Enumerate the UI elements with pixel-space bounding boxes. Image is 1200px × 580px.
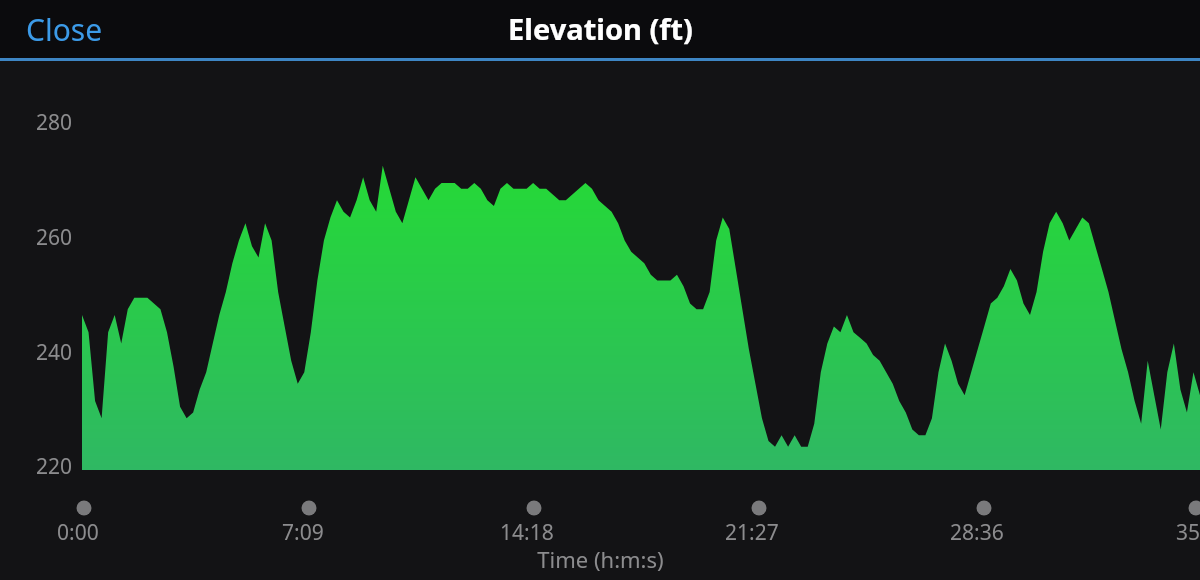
staticText: 260 [36,223,73,252]
other: Elevation chart [0,0,1200,580]
staticText: Time (h:m:s) [537,544,664,574]
staticText: 0:00 [57,518,99,547]
staticText: 35 [1176,518,1200,547]
staticText: 14:18 [500,518,554,547]
staticText: Close [26,9,103,50]
button[interactable]: Close [26,9,103,50]
staticText: 280 [36,108,73,137]
staticText: 21:27 [725,518,779,547]
staticText: 7:09 [282,518,324,547]
staticText: 240 [36,338,73,367]
staticText: Elevation (ft) [508,9,693,48]
staticText: 220 [36,452,73,481]
staticText: 28:36 [950,518,1004,547]
